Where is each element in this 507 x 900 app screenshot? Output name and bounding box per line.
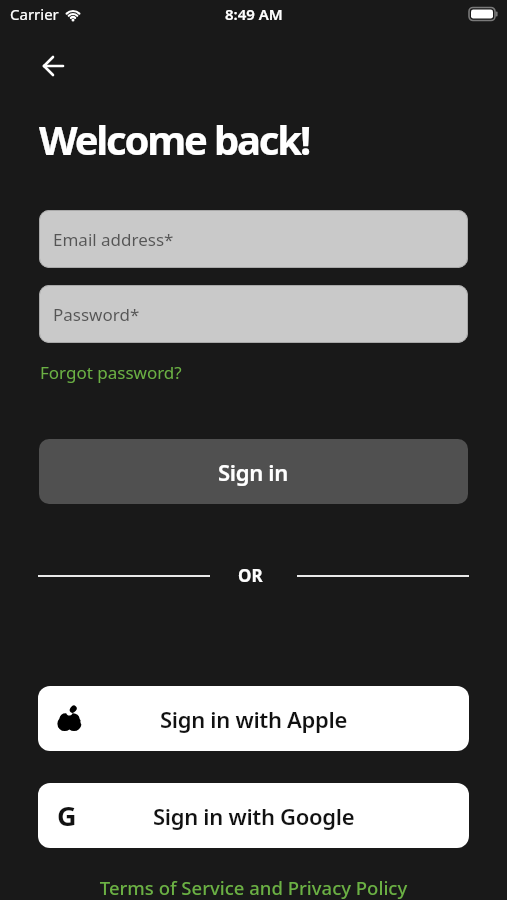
button[interactable]: Terms of Service and Privacy Policy: [0, 875, 507, 900]
staticText: Email address*: [53, 228, 174, 251]
staticText: Password*: [53, 303, 140, 326]
staticText: Sign in with Google: [153, 801, 355, 831]
staticText: Welcome back!: [39, 112, 309, 166]
button[interactable]: Forgot password?: [40, 361, 182, 384]
staticText: 8:49 AM: [225, 4, 283, 24]
button[interactable]: Email address*: [39, 210, 468, 268]
staticText: Sign in with Apple: [160, 704, 348, 734]
staticText: Sign in: [218, 457, 289, 487]
button[interactable]: Password*: [39, 285, 468, 343]
button[interactable]: Sign in: [39, 439, 468, 504]
button[interactable]: [31, 44, 75, 88]
button[interactable]: Sign in with Apple: [38, 686, 469, 751]
button[interactable]: G: [38, 783, 469, 848]
staticText: G: [57, 797, 77, 834]
staticText: Carrier: [10, 4, 59, 24]
staticText: OR: [238, 564, 263, 587]
